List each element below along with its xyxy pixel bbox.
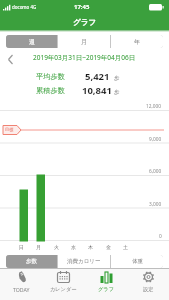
button[interactable]: 月 — [58, 35, 110, 48]
staticText: 2019年03月31日~2019年04月06日 — [33, 53, 136, 62]
button[interactable]: 歩数 — [6, 255, 57, 268]
staticText: 歩 — [114, 89, 120, 96]
staticText: 体重 — [132, 258, 143, 265]
button[interactable]: カレンダー — [42, 268, 84, 300]
staticText: 歩 — [114, 75, 120, 82]
staticText: 消費カロリー — [67, 258, 101, 265]
button[interactable] — [8, 55, 13, 64]
staticText: 月 — [36, 244, 41, 250]
staticText: 土 — [123, 244, 128, 250]
staticText: 火 — [54, 244, 59, 250]
staticText: 10,841 — [82, 84, 112, 97]
staticText: 週 — [29, 38, 35, 46]
staticText: 金 — [106, 244, 111, 250]
staticText: 6,000 — [149, 168, 162, 175]
staticText: 日 — [19, 244, 24, 250]
staticText: 0 — [159, 233, 162, 240]
staticText: 累積歩数 — [36, 86, 65, 95]
staticText: グラフ — [73, 18, 97, 27]
button[interactable]: TODAY — [0, 268, 42, 300]
staticText: 平均歩数 — [36, 72, 65, 81]
staticText: 月 — [81, 38, 87, 46]
button[interactable]: 体重 — [111, 255, 163, 268]
staticText: 水 — [71, 244, 76, 250]
staticText: 年 — [134, 38, 140, 46]
staticText: docomo 4G — [12, 4, 37, 10]
staticText: 設定 — [143, 286, 154, 293]
button[interactable]: 年 — [111, 35, 163, 48]
staticText: グラフ — [98, 286, 114, 293]
button[interactable]: 設定 — [127, 268, 169, 300]
button[interactable]: 週 — [6, 35, 57, 48]
staticText: TODAY — [13, 286, 30, 293]
staticText: 木 — [88, 244, 93, 250]
staticText: 5,421 — [85, 70, 110, 83]
staticText: 12,000 — [146, 103, 162, 110]
staticText: 歩数 — [26, 258, 37, 265]
staticText: 目標 — [5, 127, 14, 132]
staticText: カレンダー — [50, 286, 77, 293]
staticText: 9,000 — [149, 136, 162, 143]
staticText: 3,000 — [149, 201, 162, 208]
button[interactable]: 消費カロリー — [58, 255, 110, 268]
button[interactable]: グラフ — [85, 268, 127, 300]
staticText: 17:45 — [74, 3, 90, 11]
